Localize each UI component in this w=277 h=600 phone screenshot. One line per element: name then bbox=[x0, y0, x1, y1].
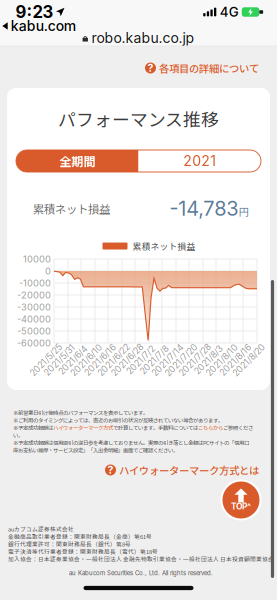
staticText: い。 bbox=[13, 431, 23, 439]
staticText: 2021/5/31 bbox=[39, 355, 79, 365]
staticText: 2021/6/4 bbox=[55, 355, 92, 365]
staticText: 円 bbox=[239, 204, 249, 219]
staticText: 電子決済等代行業者登録：関東財務局長（電代）第18号 bbox=[8, 547, 158, 556]
staticText: 金融商品取引業者登録：関東財務局長（金商）第61号 bbox=[8, 532, 152, 541]
staticText: 2021/7/14 bbox=[147, 355, 188, 365]
staticText: 10000 bbox=[23, 253, 51, 265]
staticText: -40000 bbox=[17, 313, 51, 325]
staticText: -60000 bbox=[17, 337, 51, 349]
staticText: 2021/8/16 bbox=[215, 355, 255, 365]
staticText: auカブコム証券株式会社 bbox=[8, 525, 74, 533]
staticText: kabu.com bbox=[11, 17, 76, 34]
staticText: 2021/7/20 bbox=[160, 355, 202, 365]
staticText: 2021/7/2 bbox=[123, 355, 159, 365]
button[interactable]: 2021 bbox=[138, 150, 261, 172]
staticText: ? bbox=[147, 62, 153, 74]
button[interactable]: ? bbox=[103, 459, 261, 481]
button[interactable]: Scroll to top bbox=[220, 479, 261, 520]
staticText: こちらから bbox=[198, 423, 223, 431]
staticText: で計算しています。手数料については bbox=[113, 423, 198, 431]
staticText: 累積ネット損益 bbox=[132, 240, 195, 252]
staticText: 2021/5/25 bbox=[25, 355, 66, 365]
staticText: 累積ネット損益 bbox=[33, 200, 110, 217]
staticText: 座お支払い履歴・サービス設定」「入出金明細」画面でご確認ください。 bbox=[13, 446, 178, 454]
staticText: -10000 bbox=[19, 277, 51, 289]
staticText: 各項目の詳細について bbox=[159, 60, 259, 76]
staticText: 2021/7/28 bbox=[174, 355, 215, 365]
staticText: robo.kabu.co.jp bbox=[91, 29, 194, 46]
staticText: 9:23 bbox=[15, 2, 53, 22]
staticText: -20000 bbox=[17, 289, 51, 301]
staticText: 2021/6/10 bbox=[66, 355, 107, 365]
staticText: 2021/6/16 bbox=[80, 355, 120, 365]
staticText: 2021/6/22 bbox=[93, 355, 134, 365]
staticText: -14,783 bbox=[169, 196, 238, 221]
staticText: ご参照くださ bbox=[223, 423, 253, 431]
staticText: 銀行代理業許可：関東財務局長（銀代）第8号 bbox=[8, 540, 131, 548]
staticText: 2021/7/8 bbox=[136, 355, 172, 365]
staticText: 2021/8/20 bbox=[228, 355, 270, 365]
staticText: ? bbox=[107, 464, 113, 476]
staticText: ハイウォーターマーク方式とは bbox=[119, 462, 259, 478]
staticText: 4G bbox=[220, 4, 239, 20]
staticText: ※ご利用のタイミングによっては、直近のお取引の状況が反映されていない場合がありま… bbox=[13, 416, 223, 424]
staticText: ※予定成功報酬は bbox=[13, 423, 53, 431]
staticText: 全期間 bbox=[59, 152, 95, 170]
staticText: 2021 bbox=[183, 152, 216, 169]
staticText: 2021/8/10 bbox=[201, 355, 242, 365]
staticText: 2021/8/3 bbox=[190, 355, 226, 365]
button[interactable]: 全期間 bbox=[16, 150, 138, 172]
staticText: au Kabucom Securities Co., Ltd. All righ… bbox=[69, 569, 213, 577]
staticText: 加入協会：日本証券業協会・一般社団法人 金融先物取引業協会・一般社団法人 日本投… bbox=[8, 555, 274, 563]
staticText: -50000 bbox=[17, 325, 51, 337]
button[interactable]: ? bbox=[143, 57, 261, 79]
staticText: 2021/6/28 bbox=[107, 355, 148, 365]
staticText: 0 bbox=[45, 265, 51, 277]
staticText: ハイウォーターマーク方式 bbox=[53, 423, 113, 431]
staticText: パフォーマンス推移 bbox=[58, 106, 219, 131]
staticText: ※予定成功報酬は信用取引の逆日歩を考慮しておりません。実際の引き落とし金額はPC… bbox=[13, 438, 249, 446]
staticText: -30000 bbox=[17, 301, 51, 313]
staticText: TOP^ bbox=[231, 501, 251, 512]
staticText: ※前営業日引け後時点のパフォーマンスを表示しています。 bbox=[13, 408, 148, 416]
